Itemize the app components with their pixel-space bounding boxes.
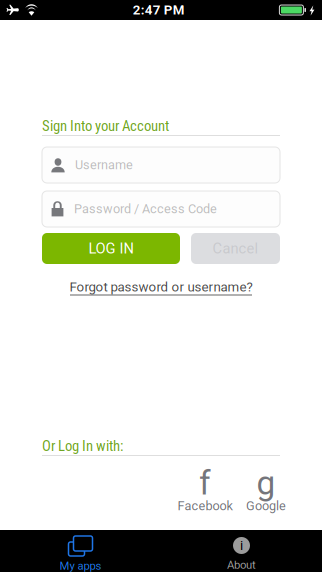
staticText: f xyxy=(199,463,211,503)
staticText: Google xyxy=(246,499,286,513)
staticText: Cancel xyxy=(212,240,258,257)
button[interactable]: i xyxy=(161,530,322,572)
staticText: Forgot password or username? xyxy=(69,279,252,295)
button[interactable]: Forgot password or username? xyxy=(42,279,280,297)
button[interactable]: f xyxy=(177,467,233,513)
button[interactable]: My apps xyxy=(0,530,161,572)
staticText: Password / Access Code xyxy=(74,202,217,216)
staticText: g xyxy=(256,463,275,503)
button[interactable]: LOG IN xyxy=(42,233,180,264)
staticText: 2:47 PM xyxy=(133,2,185,18)
staticText: Facebook xyxy=(177,499,232,513)
button[interactable]: g xyxy=(244,467,288,513)
staticText: i xyxy=(240,538,243,553)
staticText: About xyxy=(227,558,256,572)
staticText: Username xyxy=(75,158,133,172)
staticText: Sign Into your Account xyxy=(42,117,169,135)
staticText: My apps xyxy=(59,559,101,572)
staticText: LOG IN xyxy=(88,240,133,257)
staticText: Or Log In with: xyxy=(42,437,123,455)
button[interactable]: Cancel xyxy=(191,233,280,264)
